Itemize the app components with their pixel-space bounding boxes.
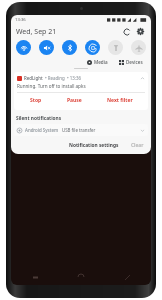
button[interactable]: Settings <box>135 26 146 37</box>
staticText: Notification settings <box>69 142 119 149</box>
staticText: Pause <box>67 97 82 104</box>
staticText: • Reading <box>45 75 65 81</box>
staticText: USB file transfer <box>62 127 96 133</box>
staticText: Devices <box>126 59 143 65</box>
button[interactable]: Recents <box>29 271 41 283</box>
button[interactable]: Wi-Fi <box>16 40 31 55</box>
staticText: • 13:36 <box>67 75 82 81</box>
button[interactable]: Restart <box>121 26 132 37</box>
staticText: Wed, Sep 21 <box>16 27 57 37</box>
staticText: Next filter <box>107 97 133 104</box>
button[interactable]: Back <box>121 271 133 283</box>
button[interactable]: Pause <box>63 95 86 106</box>
staticText: Android System <box>25 127 59 133</box>
button[interactable]: Media <box>85 58 110 66</box>
staticText: Silent notifications <box>16 115 62 122</box>
button[interactable]: Home <box>75 271 87 283</box>
staticText: RedLight <box>24 75 43 81</box>
button[interactable]: Auto rotate <box>85 40 100 55</box>
staticText: 13:36 <box>15 17 26 23</box>
button[interactable]: RedLight <box>14 72 148 110</box>
button[interactable]: Stop <box>26 95 46 106</box>
staticText: Media <box>94 59 108 65</box>
button[interactable]: Flashlight <box>108 40 123 55</box>
button[interactable]: Airplane mode <box>131 40 146 55</box>
staticText: Stop <box>30 97 42 104</box>
button[interactable]: Next filter <box>103 95 137 106</box>
button[interactable]: Devices <box>117 58 145 66</box>
staticText: Clear <box>131 142 144 149</box>
button[interactable]: Clear <box>129 141 146 150</box>
button[interactable]: Android System <box>14 124 148 136</box>
staticText: Running. Turn off to install apks <box>17 83 86 89</box>
button[interactable]: Notification settings <box>67 141 121 150</box>
button[interactable]: Sound off <box>39 40 54 55</box>
button[interactable]: Bluetooth <box>62 40 77 55</box>
